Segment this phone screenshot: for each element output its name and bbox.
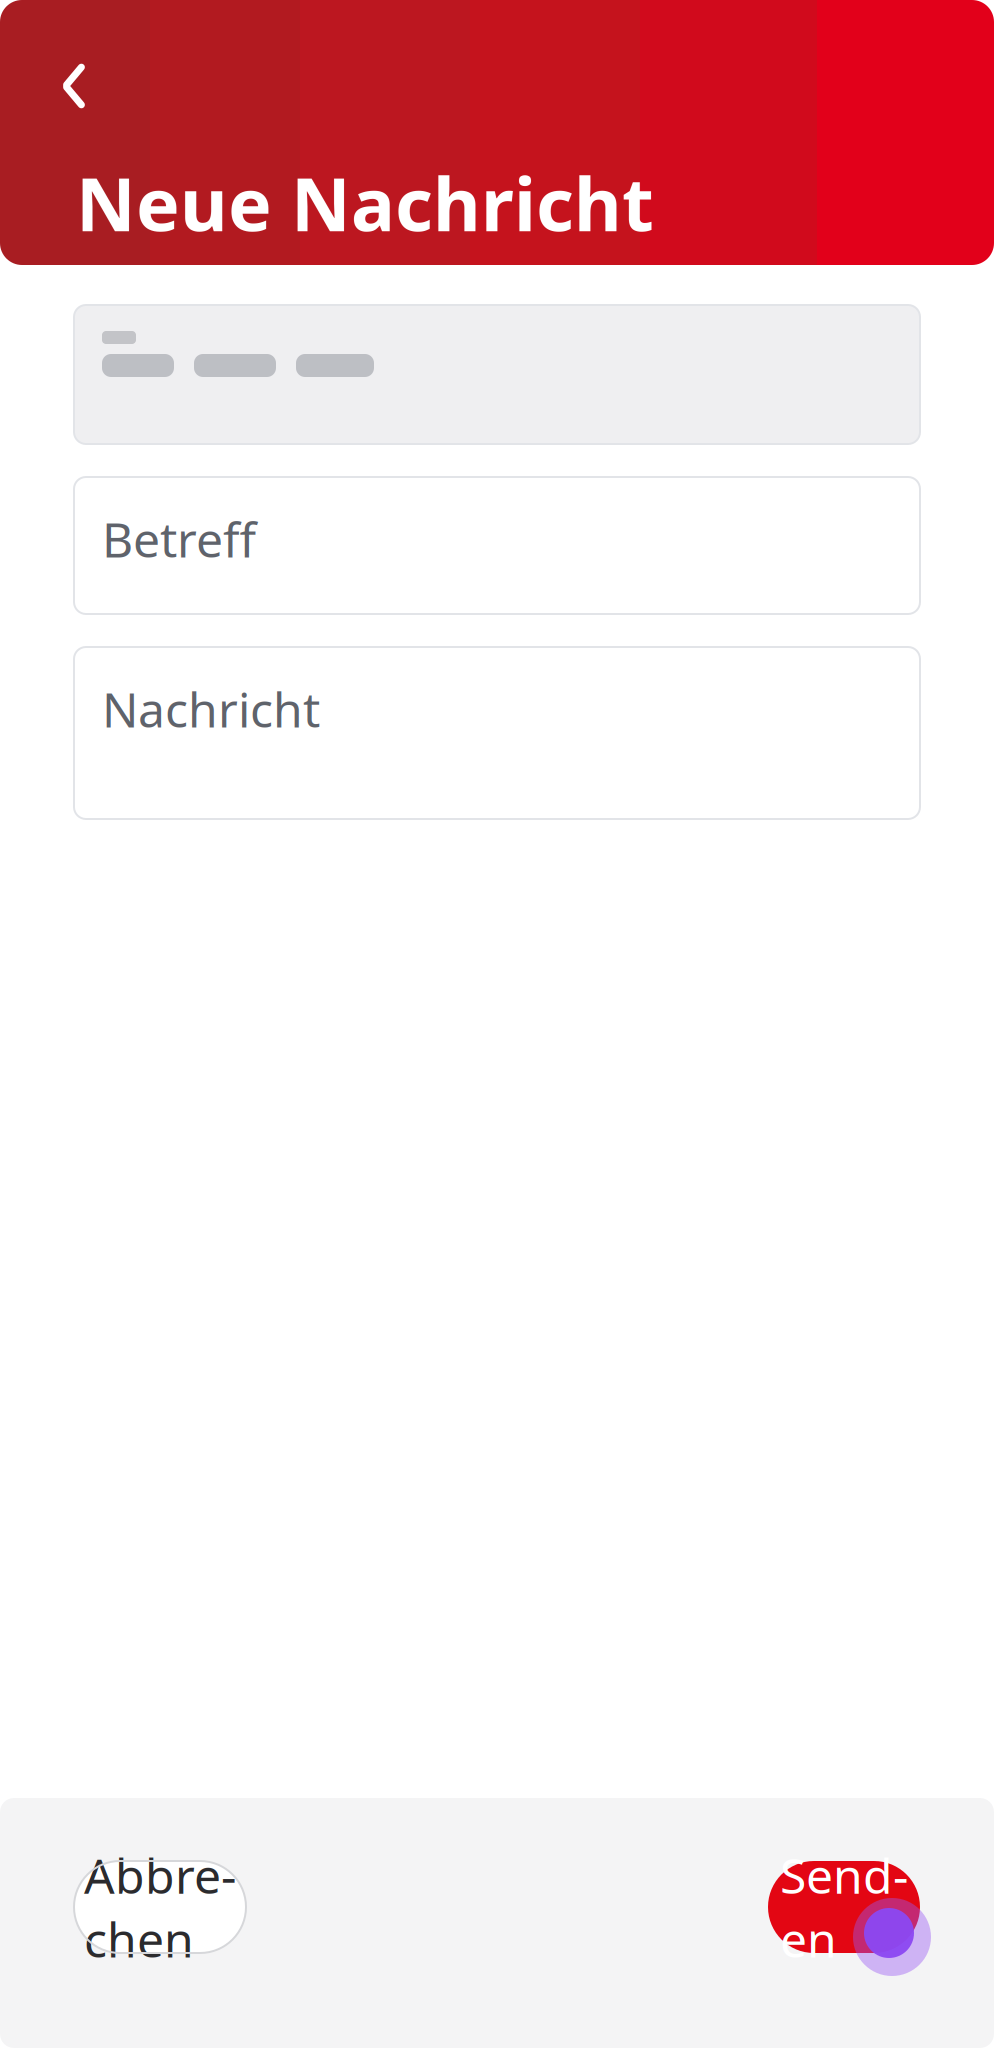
button[interactable]: Nachricht	[74, 647, 920, 819]
staticText: Neue Nachricht	[76, 154, 654, 251]
button[interactable]	[74, 305, 920, 444]
button[interactable]: Zurück	[32, 44, 116, 128]
staticText: Senden	[780, 1843, 908, 1971]
button[interactable]: Senden	[768, 1861, 920, 1953]
button[interactable]: Abbrechen	[74, 1861, 246, 1953]
staticText: Betreff	[102, 507, 256, 571]
staticText: Nachricht	[102, 677, 320, 741]
button[interactable]: Betreff	[74, 477, 920, 614]
staticText: Abbrechen	[84, 1843, 236, 1971]
